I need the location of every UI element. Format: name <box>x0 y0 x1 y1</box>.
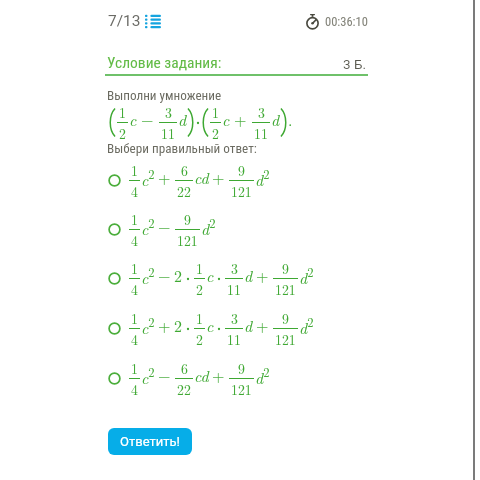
staticText: 22 <box>177 181 191 201</box>
button[interactable]: 1 <box>0 253 480 303</box>
staticText: 3 <box>165 102 172 122</box>
staticText: 9 <box>282 258 289 278</box>
staticText: 9 <box>238 358 245 378</box>
staticText: 121 <box>275 329 296 349</box>
staticText: 7/13 <box>108 12 141 30</box>
staticText: cd <box>194 166 209 189</box>
other: Task list <box>145 14 161 29</box>
staticText: 2 <box>196 279 203 299</box>
staticText: Условие задания: <box>107 54 222 72</box>
staticText: 11 <box>227 329 241 349</box>
staticText: Выполни умножение <box>107 88 222 103</box>
staticText: c <box>129 108 137 131</box>
staticText: 4 <box>131 379 138 399</box>
staticText: 1 <box>131 209 138 229</box>
staticText: 1 <box>131 358 138 378</box>
staticText: 11 <box>254 123 268 143</box>
staticText: 1 <box>212 102 219 122</box>
staticText: − <box>141 108 154 131</box>
staticText: 4 <box>131 230 138 250</box>
staticText: 2 <box>174 264 183 287</box>
staticText: d2 <box>255 165 270 190</box>
button[interactable]: 1 <box>0 353 480 403</box>
button[interactable]: 1 <box>0 155 480 205</box>
staticText: + <box>256 264 269 287</box>
staticText: . <box>288 108 293 131</box>
staticText: 121 <box>231 379 252 399</box>
staticText: 2 <box>174 314 183 337</box>
staticText: + <box>212 166 225 189</box>
staticText: 1 <box>196 258 203 278</box>
staticText: 1 <box>196 308 203 328</box>
staticText: 3 <box>258 102 265 122</box>
staticText: − <box>158 364 171 387</box>
staticText: d2 <box>299 313 314 338</box>
staticText: c2 <box>141 313 155 338</box>
staticText: d <box>244 314 253 337</box>
staticText: 11 <box>161 123 175 143</box>
staticText: 11 <box>227 279 241 299</box>
staticText: 1 <box>131 258 138 278</box>
staticText: d2 <box>201 214 216 239</box>
staticText: d <box>271 108 280 131</box>
staticText: 121 <box>231 181 252 201</box>
staticText: 4 <box>131 329 138 349</box>
staticText: 2 <box>119 123 126 143</box>
button[interactable]: 1 <box>0 204 480 254</box>
staticText: d2 <box>255 363 270 388</box>
staticText: d <box>178 108 187 131</box>
staticText: + <box>158 166 171 189</box>
staticText: + <box>256 314 269 337</box>
staticText: d2 <box>299 263 314 288</box>
staticText: c <box>222 108 230 131</box>
staticText: c <box>206 264 214 287</box>
staticText: − <box>158 215 171 238</box>
staticText: c <box>206 314 214 337</box>
staticText: 3 <box>231 258 238 278</box>
staticText: c2 <box>141 165 155 190</box>
staticText: − <box>158 264 171 287</box>
staticText: 121 <box>275 279 296 299</box>
staticText: 4 <box>131 279 138 299</box>
staticText: 1 <box>119 102 126 122</box>
staticText: 2 <box>196 329 203 349</box>
staticText: 4 <box>131 181 138 201</box>
staticText: 22 <box>177 379 191 399</box>
staticText: 00:36:10 <box>325 14 368 29</box>
button[interactable]: Ответить! <box>108 428 192 455</box>
staticText: + <box>212 364 225 387</box>
staticText: 121 <box>177 230 198 250</box>
staticText: c2 <box>141 263 155 288</box>
staticText: 9 <box>282 308 289 328</box>
staticText: 6 <box>181 358 188 378</box>
staticText: 3 Б. <box>343 56 367 72</box>
staticText: 9 <box>238 160 245 180</box>
button[interactable]: Task list <box>145 14 161 29</box>
staticText: c2 <box>141 214 155 239</box>
staticText: 2 <box>212 123 219 143</box>
staticText: 1 <box>131 308 138 328</box>
button[interactable]: 1 <box>0 303 480 353</box>
staticText: 9 <box>184 209 191 229</box>
staticText: + <box>158 314 171 337</box>
staticText: 6 <box>181 160 188 180</box>
staticText: Ответить! <box>120 434 180 449</box>
other: Elapsed time <box>305 14 320 29</box>
staticText: Выбери правильный ответ: <box>107 141 257 156</box>
staticText: c2 <box>141 363 155 388</box>
staticText: 1 <box>131 160 138 180</box>
staticText: d <box>244 264 253 287</box>
staticText: cd <box>194 364 209 387</box>
staticText: + <box>234 108 247 131</box>
staticText: 3 <box>231 308 238 328</box>
